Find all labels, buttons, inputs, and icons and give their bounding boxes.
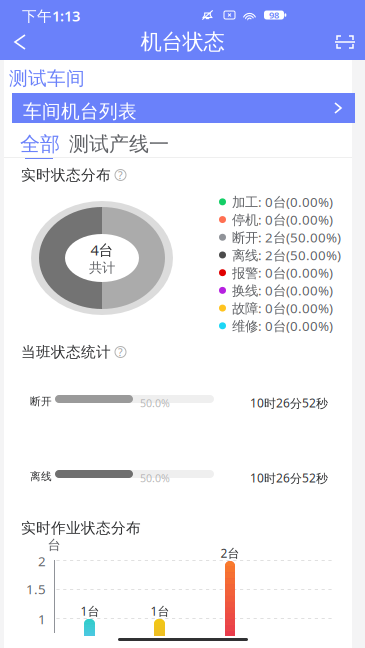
staticText: 断开: 2台(50.00%): [232, 228, 341, 246]
staticText: 下午1:13: [22, 6, 80, 25]
staticText: 10时26分52秒: [250, 470, 328, 486]
staticText: 全部: [20, 132, 60, 156]
staticText: 断开: [30, 395, 52, 408]
staticText: 故障: 0台(0.00%): [232, 299, 333, 317]
button[interactable]: Back: [0, 22, 40, 62]
staticText: 报警: 0台(0.00%): [232, 264, 333, 281]
staticText: 1.5: [26, 580, 46, 598]
staticText: 98: [269, 9, 279, 21]
staticText: 1台: [80, 603, 99, 619]
button[interactable]: 全部: [18, 133, 62, 155]
staticText: 1台: [150, 603, 169, 619]
button[interactable]: 测试产线一: [69, 133, 169, 155]
staticText: 离线: 2台(50.00%): [232, 246, 341, 264]
staticText: 1: [38, 610, 46, 628]
staticText: 当班状态统计: [21, 343, 111, 361]
staticText: 50.0%: [140, 471, 170, 485]
staticText: 台: [47, 537, 60, 553]
staticText: ?: [118, 168, 123, 182]
staticText: 50.0%: [140, 396, 170, 410]
staticText: 机台状态: [140, 29, 224, 55]
button[interactable]: 车间机台列表: [12, 93, 355, 123]
staticText: 测试产线一: [69, 132, 169, 156]
staticText: 加工: 0台(0.00%): [232, 193, 333, 211]
staticText: 换线: 0台(0.00%): [232, 281, 333, 299]
staticText: 2: [38, 552, 46, 570]
staticText: 实时作业状态分布: [21, 519, 141, 537]
staticText: 共计: [89, 260, 115, 276]
staticText: ?: [118, 345, 123, 359]
staticText: 实时状态分布: [21, 166, 111, 184]
staticText: 4台: [90, 240, 113, 260]
staticText: 2台: [220, 545, 239, 561]
button[interactable]: Scan: [325, 22, 365, 62]
staticText: 离线: [30, 470, 52, 483]
staticText: 10时26分52秒: [250, 395, 328, 411]
staticText: 维修: 0台(0.00%): [232, 317, 333, 335]
staticText: 停机: 0台(0.00%): [232, 211, 333, 228]
staticText: 测试车间: [9, 67, 85, 90]
staticText: 车间机台列表: [23, 100, 137, 123]
